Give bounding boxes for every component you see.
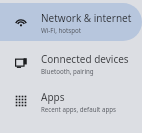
other: Network and internet [15, 16, 27, 28]
other: Connected devices [15, 57, 27, 69]
staticText: Bluetooth, pairing [41, 67, 94, 75]
staticText: Recent apps, default apps [41, 105, 116, 113]
staticText: Connected devices [41, 52, 129, 66]
staticText: Wi-Fi, hotspot [41, 26, 81, 34]
staticText: Network & internet [41, 11, 132, 25]
staticText: Apps [41, 90, 65, 104]
button[interactable]: Connected devices [0, 44, 142, 82]
other: Apps [15, 95, 27, 107]
button[interactable]: Network and internet [0, 3, 142, 41]
button[interactable]: Apps [0, 82, 142, 120]
